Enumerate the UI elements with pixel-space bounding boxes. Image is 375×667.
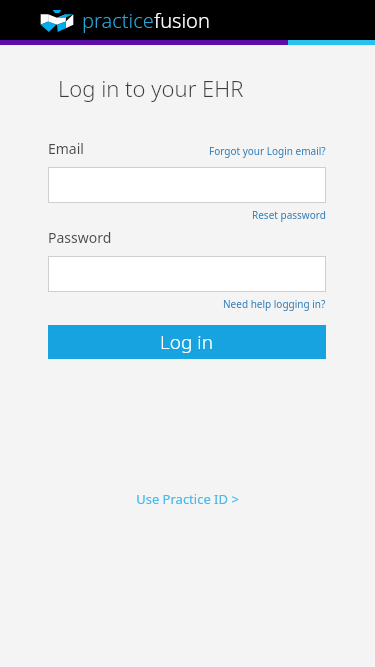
button[interactable] <box>48 256 326 292</box>
staticText: practice <box>82 7 154 34</box>
button[interactable]: Forgot your Login email? <box>209 144 326 158</box>
staticText: Password <box>48 228 112 247</box>
button[interactable] <box>48 167 326 203</box>
staticText: Use Practice ID > <box>136 490 239 508</box>
button[interactable]: Practice Fusion <box>40 7 210 34</box>
staticText: Forgot your Login email? <box>209 144 326 158</box>
staticText: fusion <box>154 7 210 34</box>
staticText: Log in <box>160 329 214 355</box>
button[interactable]: Use Practice ID > <box>136 490 239 508</box>
button[interactable]: Log in <box>48 325 326 359</box>
staticText: Reset password <box>252 208 326 222</box>
staticText: Need help logging in? <box>223 297 326 311</box>
button[interactable]: Need help logging in? <box>223 297 326 311</box>
staticText: Email <box>48 139 84 158</box>
button[interactable]: Reset password <box>252 208 326 222</box>
staticText: Log in to your EHR <box>58 73 244 103</box>
